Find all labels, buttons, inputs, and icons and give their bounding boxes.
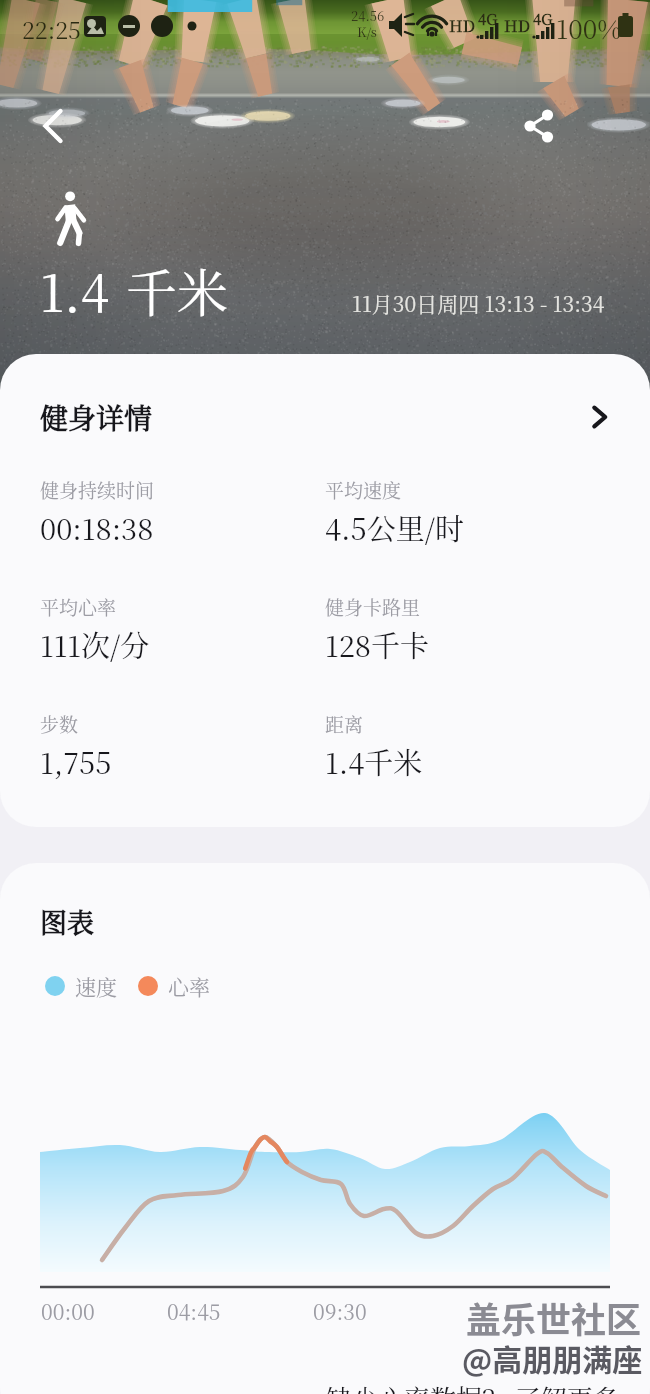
staticText: 心率 bbox=[168, 971, 210, 1001]
staticText: 1,755 bbox=[40, 741, 112, 783]
staticText: 128千卡 bbox=[325, 624, 430, 666]
staticText: 11月30日周四 13:13 - 13:34 bbox=[352, 288, 605, 318]
staticText: 4.5公里/时 bbox=[325, 507, 464, 549]
staticText: 平均心率 bbox=[40, 593, 117, 620]
staticText: 健身详情 bbox=[40, 397, 153, 437]
staticText: 步数 bbox=[40, 710, 79, 737]
staticText: @高朋朋满座 bbox=[462, 1336, 643, 1379]
staticText: 4G bbox=[478, 8, 498, 30]
staticText: 千米 bbox=[126, 253, 229, 326]
button[interactable]: 速度 bbox=[45, 971, 210, 1001]
staticText: 111次/分 bbox=[40, 624, 150, 666]
staticText: HD bbox=[504, 14, 530, 37]
staticText: 速度 bbox=[75, 971, 117, 1001]
staticText: K/s bbox=[357, 22, 377, 41]
button[interactable]: Back bbox=[30, 103, 76, 149]
staticText: 图表 bbox=[40, 902, 94, 941]
staticText: 4G bbox=[533, 8, 553, 30]
staticText: 04:45 bbox=[167, 1296, 221, 1326]
staticText: 1.4千米 bbox=[325, 741, 423, 783]
staticText: 24.56 bbox=[351, 6, 385, 25]
staticText: 09:30 bbox=[313, 1296, 367, 1326]
staticText: 平均速度 bbox=[325, 476, 402, 503]
staticText: 健身卡路里 bbox=[325, 593, 421, 620]
staticText: 22:25 bbox=[22, 13, 81, 46]
staticText: 距离 bbox=[325, 710, 364, 737]
staticText: 盖乐世社区 bbox=[466, 1292, 642, 1343]
button[interactable]: 缺少心率数据？ 了解更多 bbox=[326, 1379, 619, 1394]
staticText: 00:18:38 bbox=[40, 507, 154, 549]
staticText: 100% bbox=[556, 9, 622, 46]
staticText: 00:00 bbox=[41, 1296, 95, 1326]
staticText: 健身持续时间 bbox=[40, 476, 155, 503]
button[interactable]: Share bbox=[516, 103, 562, 149]
staticText: 1.4 bbox=[40, 253, 110, 326]
staticText: HD bbox=[449, 14, 475, 37]
button[interactable]: 健身详情 bbox=[0, 354, 650, 476]
